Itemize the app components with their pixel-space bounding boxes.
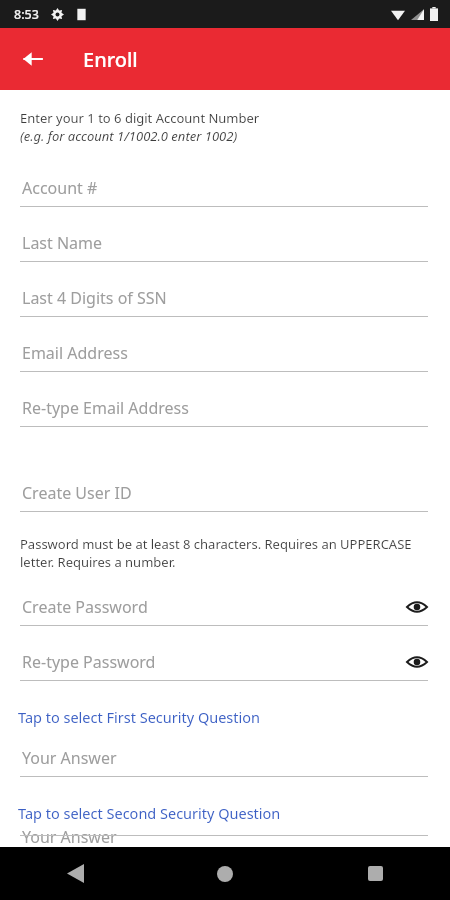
staticText: Last 4 Digits of SSN <box>22 287 167 309</box>
button[interactable]: Toggle password visibility <box>402 647 432 677</box>
staticText: Password must be at least 8 characters. … <box>20 535 432 571</box>
button[interactable]: Last 4 Digits of SSN <box>0 273 450 328</box>
staticText: Your Answer <box>22 826 117 844</box>
button[interactable]: Tap to select Second Security Question <box>0 797 450 829</box>
staticText: Account # <box>22 177 98 199</box>
staticText: Create User ID <box>22 482 132 504</box>
staticText: Create Password <box>22 596 148 618</box>
button[interactable]: Your Answer <box>0 829 450 847</box>
button[interactable]: Re-type Password <box>0 637 450 692</box>
staticText: Your Answer <box>22 747 117 769</box>
staticText: Email Address <box>22 342 128 364</box>
button[interactable]: Email Address <box>0 328 450 383</box>
button[interactable]: Home <box>150 847 300 900</box>
staticText: Re-type Password <box>22 651 156 673</box>
staticText: 8:53 <box>14 6 39 23</box>
staticText: Enroll <box>83 46 138 73</box>
staticText: Enter your 1 to 6 digit Account Number <box>20 109 260 127</box>
button[interactable]: Your Answer <box>0 733 450 788</box>
button[interactable]: Back <box>0 847 150 900</box>
button[interactable]: Re-type Email Address <box>0 383 450 438</box>
staticText: (e.g. for account 1/1002.0 enter 1002) <box>20 127 238 145</box>
button[interactable]: Create User ID <box>0 468 450 523</box>
button[interactable]: Account # <box>0 163 450 218</box>
staticText: Re-type Email Address <box>22 397 189 419</box>
staticText: Tap to select Second Security Question <box>18 803 281 823</box>
button[interactable]: Recent apps <box>300 847 450 900</box>
button[interactable]: Tap to select First Security Question <box>0 701 450 733</box>
button[interactable]: Toggle password visibility <box>402 592 432 622</box>
button[interactable]: Create Password <box>0 582 450 637</box>
button[interactable]: Last Name <box>0 218 450 273</box>
staticText: Last Name <box>22 232 103 254</box>
staticText: Tap to select First Security Question <box>18 707 261 727</box>
button[interactable]: Back <box>10 36 56 82</box>
